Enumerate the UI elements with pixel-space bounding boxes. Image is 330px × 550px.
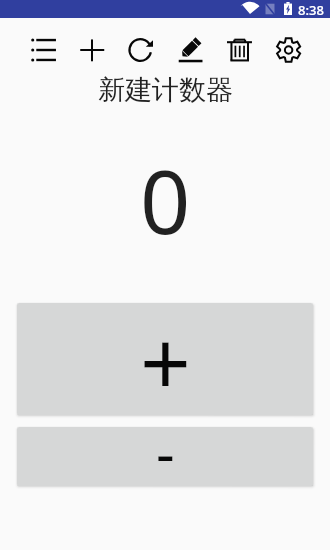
- staticText: 0: [140, 140, 191, 245]
- staticText: +: [140, 303, 191, 413]
- button[interactable]: Settings: [263, 26, 312, 74]
- button[interactable]: -: [17, 427, 313, 486]
- button[interactable]: +: [17, 303, 313, 415]
- button[interactable]: List: [18, 26, 67, 74]
- button[interactable]: Add counter: [67, 26, 116, 74]
- button[interactable]: Reset: [116, 26, 165, 74]
- button[interactable]: Edit: [165, 26, 214, 74]
- staticText: 新建计数器: [98, 73, 233, 107]
- button[interactable]: Delete: [214, 26, 263, 74]
- staticText: 8:38: [298, 1, 324, 19]
- staticText: -: [156, 427, 175, 471]
